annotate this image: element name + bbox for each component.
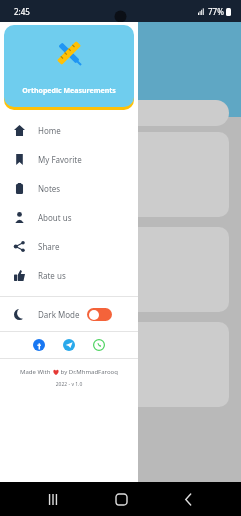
button[interactable]: Home bbox=[106, 484, 136, 514]
staticText: Orthopedic Measurements bbox=[22, 86, 116, 96]
staticText: Rate us bbox=[38, 270, 66, 281]
button[interactable]: Dark Mode bbox=[0, 297, 138, 331]
button[interactable]: Home bbox=[0, 116, 138, 145]
staticText: Share bbox=[38, 241, 60, 252]
button[interactable]: Back bbox=[173, 484, 203, 514]
button[interactable]: Notes bbox=[0, 174, 138, 203]
button[interactable]: My Favorite bbox=[0, 145, 138, 174]
button[interactable]: WhatsApp bbox=[90, 336, 108, 354]
button[interactable]: Recent apps bbox=[38, 484, 68, 514]
button[interactable]: About us bbox=[0, 203, 138, 232]
button[interactable] bbox=[12, 100, 229, 126]
staticText: Home bbox=[38, 125, 61, 136]
staticText: 77% bbox=[208, 6, 224, 17]
staticText: My Favorite bbox=[38, 154, 82, 165]
staticText: 2022 - v 1.0 bbox=[0, 381, 138, 388]
button[interactable]: Telegram bbox=[60, 336, 78, 354]
button[interactable] bbox=[12, 322, 229, 407]
staticText: Dark Mode bbox=[38, 309, 80, 320]
other: Dark mode toggle bbox=[87, 308, 112, 321]
staticText: About us bbox=[38, 212, 72, 223]
button[interactable] bbox=[12, 132, 229, 217]
button[interactable]: Facebook bbox=[30, 336, 48, 354]
staticText: by Dr.MhmadFarooq bbox=[59, 368, 118, 376]
staticText: Notes bbox=[38, 183, 61, 194]
staticText: 2:45 bbox=[14, 6, 30, 17]
button[interactable]: Rate us bbox=[0, 261, 138, 290]
button[interactable] bbox=[12, 227, 229, 312]
staticText: Made With bbox=[20, 368, 53, 376]
button[interactable]: Share bbox=[0, 232, 138, 261]
